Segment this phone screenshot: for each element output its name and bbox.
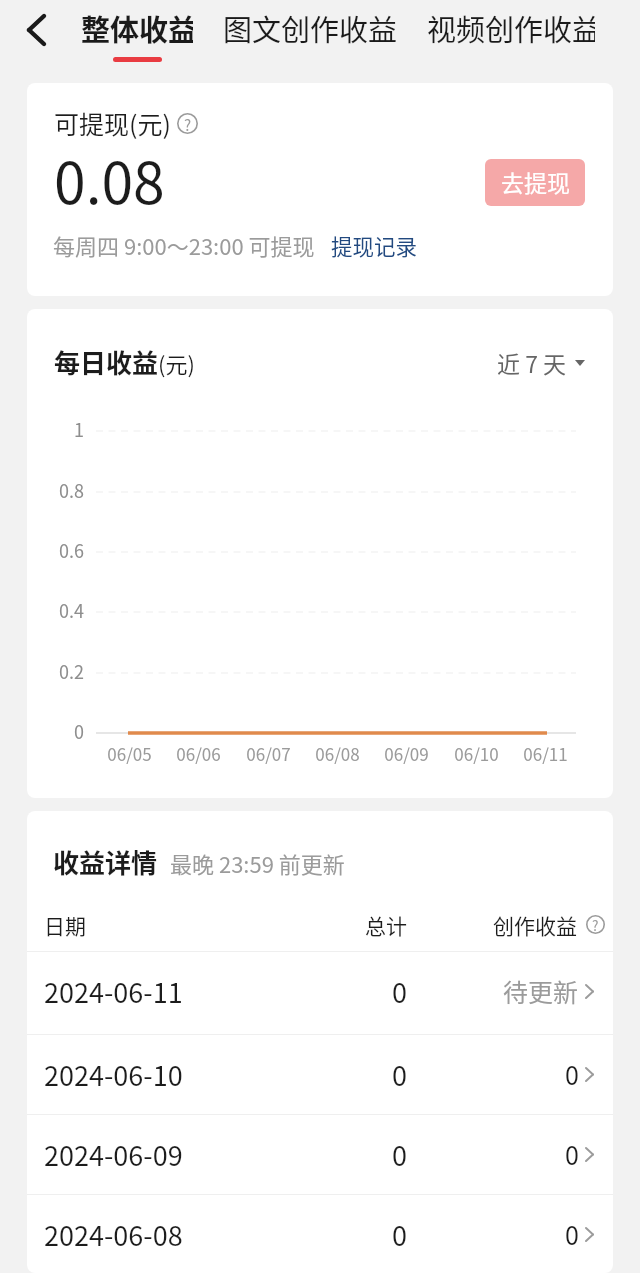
- staticText: 0.08: [54, 138, 165, 221]
- staticText: 0.4: [59, 597, 84, 623]
- staticText: 0: [74, 718, 84, 744]
- button[interactable]: 整体收益: [81, 0, 193, 68]
- staticText: 2024-06-09: [44, 1135, 183, 1174]
- staticText: 0.6: [59, 537, 84, 563]
- button[interactable]: Back: [9, 7, 61, 53]
- staticText: 06/06: [176, 741, 221, 766]
- staticText: 2024-06-08: [44, 1215, 183, 1254]
- button[interactable]: 去提现: [485, 159, 585, 206]
- staticText: 最晚 23:59 前更新: [170, 847, 345, 879]
- button[interactable]: 提现记录: [331, 230, 418, 261]
- staticText: 日期: [44, 910, 86, 940]
- button[interactable]: 2024-06-11: [27, 951, 613, 1031]
- staticText: 06/09: [384, 741, 429, 766]
- button[interactable]: 2024-06-08: [27, 1194, 613, 1273]
- staticText: 创作收益: [493, 910, 577, 940]
- staticText: 整体收益: [81, 7, 193, 49]
- staticText: 06/10: [454, 741, 499, 766]
- staticText: 可提现(元): [54, 105, 171, 141]
- button[interactable]: 近 7 天: [497, 346, 585, 379]
- staticText: 图文创作收益: [223, 7, 398, 49]
- staticText: 每周四 9:00～23:00 可提现: [53, 229, 315, 261]
- staticText: 2024-06-10: [44, 1055, 183, 1094]
- staticText: 0: [392, 972, 407, 1011]
- button[interactable]: Help: [177, 113, 198, 134]
- staticText: 06/08: [315, 741, 360, 766]
- staticText: 去提现: [501, 165, 570, 198]
- staticText: 视频创作收益: [427, 7, 595, 49]
- staticText: 06/07: [246, 741, 291, 766]
- staticText: 06/11: [523, 741, 568, 766]
- staticText: 近 7 天: [497, 346, 567, 379]
- staticText: 0: [392, 1135, 407, 1174]
- staticText: 总计: [365, 910, 407, 940]
- staticText: 0: [565, 1136, 579, 1172]
- staticText: 0: [392, 1215, 407, 1254]
- staticText: 06/05: [107, 741, 152, 766]
- button[interactable]: 图文创作收益: [222, 0, 398, 68]
- staticText: ?: [592, 915, 599, 934]
- button[interactable]: 2024-06-10: [27, 1034, 613, 1114]
- staticText: 1: [74, 416, 84, 442]
- staticText: 0: [565, 1216, 579, 1252]
- staticText: 每日收益(元): [54, 343, 195, 381]
- button[interactable]: Help: [586, 915, 605, 934]
- staticText: 待更新: [503, 973, 579, 1009]
- button[interactable]: 2024-06-09: [27, 1114, 613, 1194]
- staticText: 0: [392, 1055, 407, 1094]
- staticText: 2024-06-11: [44, 972, 183, 1011]
- staticText: 0: [565, 1056, 579, 1092]
- staticText: 0.2: [59, 658, 84, 684]
- staticText: 收益详情: [53, 843, 158, 881]
- staticText: 0.8: [59, 477, 84, 503]
- staticText: ?: [184, 113, 192, 134]
- button[interactable]: 视频创作收益: [427, 0, 595, 68]
